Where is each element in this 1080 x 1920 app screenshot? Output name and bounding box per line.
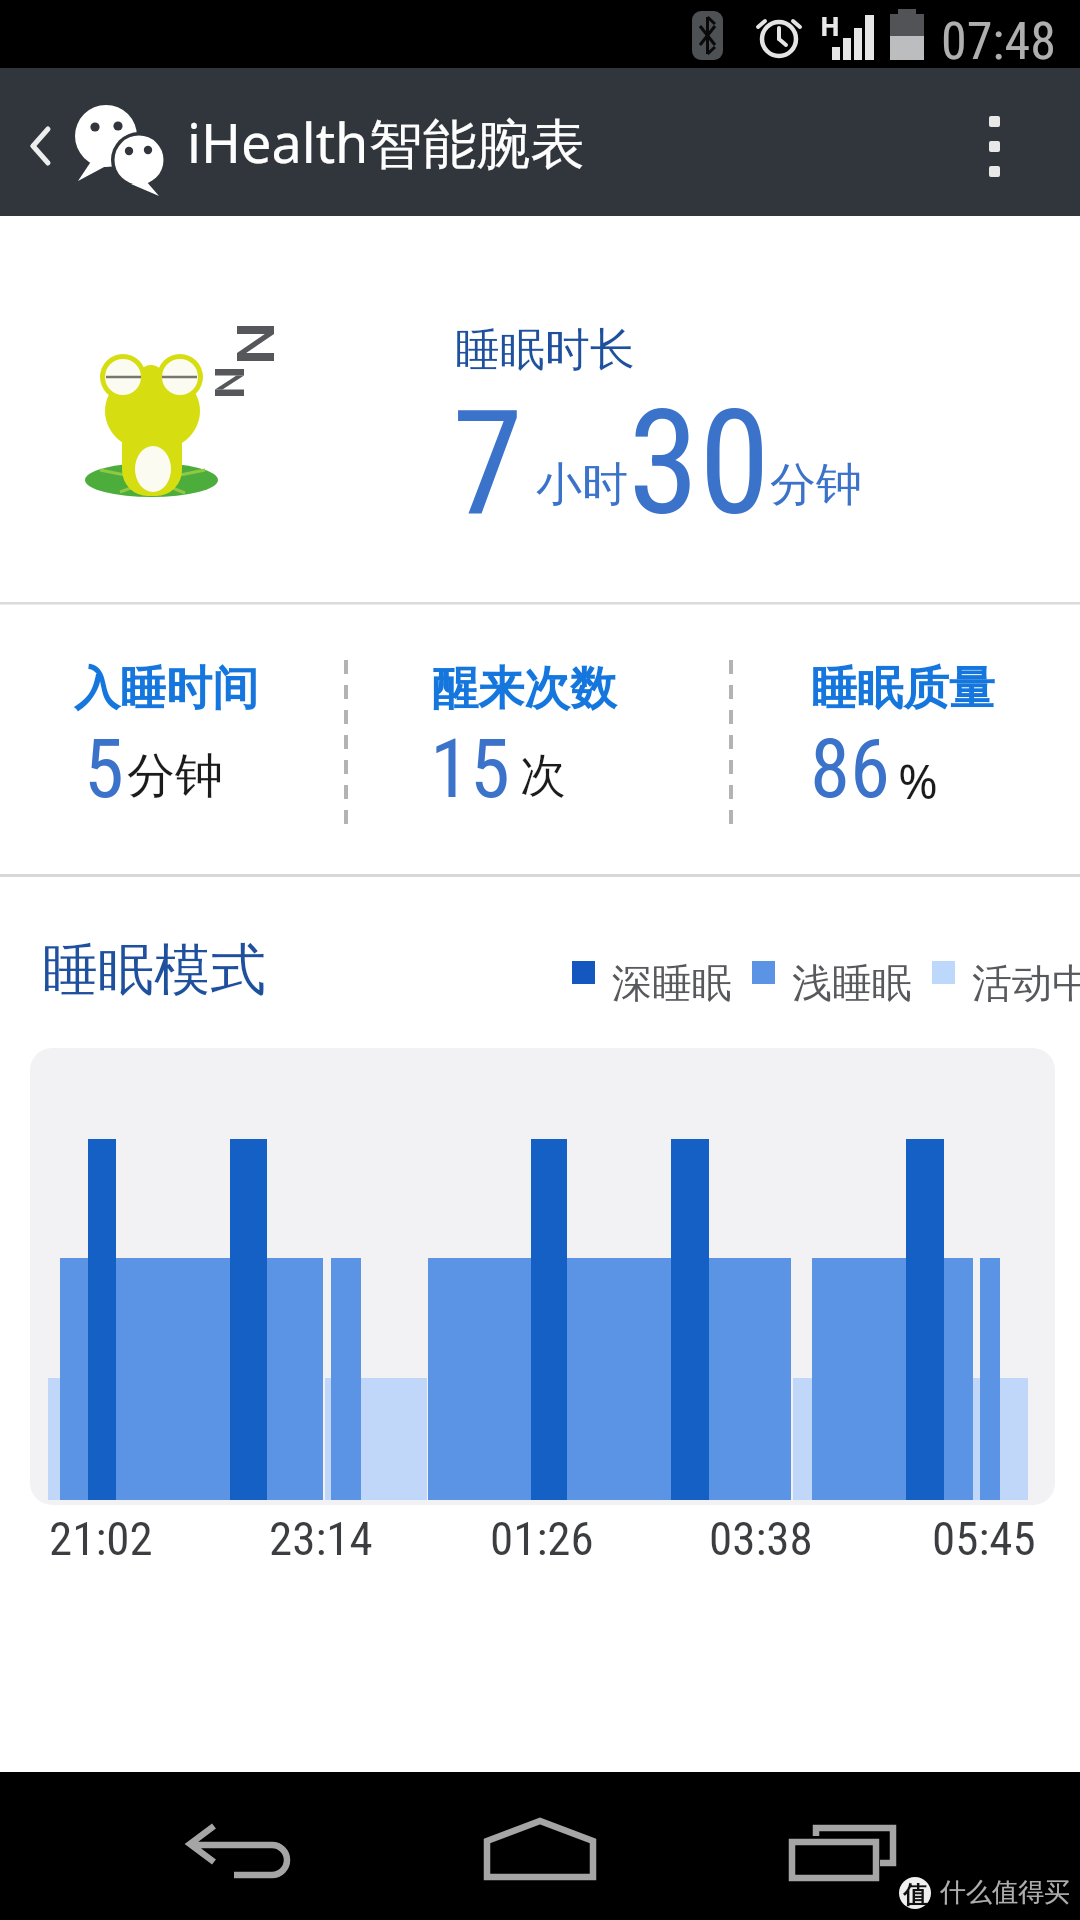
staticText: 值 <box>903 1880 927 1910</box>
staticText: 05:45 <box>932 1511 1036 1566</box>
staticText: % <box>898 748 938 813</box>
staticText: 01:26 <box>490 1511 594 1566</box>
button[interactable] <box>6 80 86 204</box>
staticText: 03:38 <box>709 1511 813 1566</box>
staticText: 深睡眠 <box>612 958 732 1008</box>
staticText: 15 <box>430 722 510 817</box>
staticText: 分钟 <box>127 746 223 806</box>
staticText: iHealth智能腕表 <box>187 105 585 179</box>
staticText: 睡眠质量 <box>811 660 995 718</box>
button[interactable] <box>140 1784 340 1908</box>
staticText: 入睡时间 <box>74 660 258 718</box>
staticText: 浅睡眠 <box>792 958 912 1008</box>
staticText: H <box>820 8 840 43</box>
staticText: 23:14 <box>269 1511 373 1566</box>
staticText: 5 <box>84 722 124 817</box>
button[interactable] <box>945 80 1075 204</box>
staticText: 醒来次数 <box>432 660 616 718</box>
staticText: 分钟 <box>770 456 862 514</box>
staticText: 小时 <box>536 456 628 514</box>
staticText: 活动中 <box>972 958 1080 1008</box>
staticText: 7 <box>452 379 524 548</box>
staticText: 86 <box>810 722 890 817</box>
staticText: 次 <box>520 747 566 805</box>
staticText: 什么值得买 <box>940 1876 1070 1909</box>
staticText: 30 <box>628 379 771 548</box>
button[interactable] <box>740 1784 940 1908</box>
button[interactable] <box>440 1784 640 1908</box>
staticText: 睡眠模式 <box>42 935 266 1006</box>
staticText: 睡眠时长 <box>455 322 635 379</box>
staticText: 21:02 <box>49 1511 153 1566</box>
staticText: 07:48 <box>941 11 1056 72</box>
